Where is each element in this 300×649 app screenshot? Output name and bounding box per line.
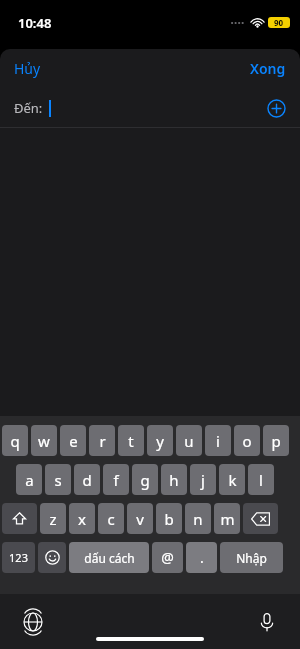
button[interactable]: Nhập xyxy=(220,542,283,573)
staticText: e xyxy=(69,431,78,451)
staticText: . xyxy=(200,548,204,567)
staticText: i xyxy=(216,431,220,451)
staticText: w xyxy=(38,431,50,451)
button[interactable]: z xyxy=(40,503,66,534)
button[interactable]: m xyxy=(214,503,240,534)
button[interactable]: p xyxy=(263,425,289,456)
button[interactable]: v xyxy=(127,503,153,534)
staticText: t xyxy=(128,431,134,451)
staticText: Đến: xyxy=(14,99,43,117)
button[interactable]: Hủy xyxy=(0,53,55,84)
button[interactable]: Change keyboard language xyxy=(20,609,46,635)
staticText: o xyxy=(242,431,252,451)
staticText: f xyxy=(113,470,119,490)
button[interactable]: Xong xyxy=(236,53,300,84)
staticText: dấu cách xyxy=(84,550,135,566)
button[interactable]: f xyxy=(103,464,129,495)
staticText: k xyxy=(228,470,237,490)
staticText: j xyxy=(201,470,205,490)
staticText: 10:48 xyxy=(18,14,52,32)
button[interactable]: o xyxy=(234,425,260,456)
button[interactable]: dấu cách xyxy=(69,542,149,573)
button[interactable]: c xyxy=(98,503,124,534)
staticText: Nhập xyxy=(236,550,267,566)
button[interactable] xyxy=(38,542,66,573)
staticText: u xyxy=(184,431,194,451)
button[interactable]: q xyxy=(2,425,28,456)
staticText: y xyxy=(156,431,164,451)
staticText: a xyxy=(25,470,34,490)
staticText: r xyxy=(99,431,106,451)
staticText: p xyxy=(271,431,281,451)
button[interactable] xyxy=(2,503,37,534)
button[interactable]: k xyxy=(219,464,245,495)
staticText: n xyxy=(193,509,203,529)
button[interactable]: d xyxy=(74,464,100,495)
staticText: m xyxy=(220,509,235,529)
staticText: @ xyxy=(161,548,174,567)
button[interactable]: 123 xyxy=(2,542,35,573)
staticText: 123 xyxy=(9,550,28,565)
button[interactable]: w xyxy=(31,425,57,456)
staticText: Hủy xyxy=(14,59,41,78)
button[interactable]: s xyxy=(45,464,71,495)
staticText: l xyxy=(259,470,263,490)
button[interactable]: j xyxy=(190,464,216,495)
button[interactable]: . xyxy=(186,542,217,573)
staticText: h xyxy=(169,470,179,490)
button[interactable] xyxy=(243,503,278,534)
button[interactable]: a xyxy=(16,464,42,495)
button[interactable]: h xyxy=(161,464,187,495)
staticText: c xyxy=(107,509,115,529)
button[interactable]: r xyxy=(89,425,115,456)
button[interactable]: t xyxy=(118,425,144,456)
staticText: d xyxy=(82,470,92,490)
staticText: g xyxy=(140,470,150,490)
button[interactable]: l xyxy=(248,464,274,495)
staticText: z xyxy=(49,509,57,529)
button[interactable]: b xyxy=(156,503,182,534)
button[interactable]: x xyxy=(69,503,95,534)
staticText: v xyxy=(136,509,144,529)
button[interactable]: u xyxy=(176,425,202,456)
button[interactable]: g xyxy=(132,464,158,495)
button[interactable]: @ xyxy=(152,542,183,573)
staticText: Xong xyxy=(250,59,286,78)
staticText: q xyxy=(10,431,20,451)
button[interactable]: n xyxy=(185,503,211,534)
button[interactable]: y xyxy=(147,425,173,456)
staticText: 90 xyxy=(274,17,284,28)
button[interactable]: Add contact xyxy=(265,97,287,119)
button[interactable]: Dictate xyxy=(254,609,280,635)
staticText: x xyxy=(78,509,86,529)
staticText: b xyxy=(164,509,174,529)
staticText: s xyxy=(54,470,62,490)
button[interactable]: i xyxy=(205,425,231,456)
button[interactable]: e xyxy=(60,425,86,456)
